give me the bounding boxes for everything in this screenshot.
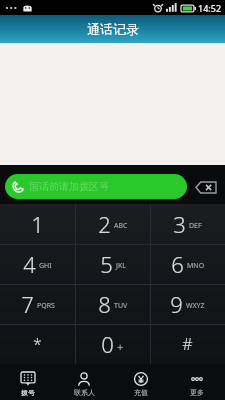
button[interactable]: * — [0, 324, 75, 364]
staticText: 5 — [100, 249, 113, 279]
staticText: 9 — [170, 289, 183, 319]
button[interactable]: 充值 — [113, 364, 169, 400]
button[interactable]: 5 — [75, 244, 150, 284]
staticText: 联系人 — [74, 388, 95, 397]
staticText: 6 — [171, 249, 184, 279]
staticText: WXYZ — [186, 301, 205, 311]
button[interactable]: 4 — [0, 244, 75, 284]
staticText: 7 — [21, 289, 34, 319]
staticText: 14:52 — [198, 2, 222, 14]
staticText: # — [182, 333, 193, 355]
staticText: 3 — [173, 209, 186, 239]
button[interactable]: # — [150, 324, 225, 364]
staticText: 8 — [98, 289, 111, 319]
staticText: 拨号 — [21, 388, 35, 397]
staticText: 0 — [101, 329, 114, 359]
button[interactable]: 6 — [150, 244, 225, 284]
staticText: GHI — [39, 261, 52, 271]
staticText: 2 — [98, 209, 111, 239]
button[interactable]: 更多 — [169, 364, 225, 400]
button[interactable]: 2 — [75, 204, 150, 244]
button[interactable]: 1 — [0, 204, 75, 244]
button[interactable]: 9 — [150, 284, 225, 324]
staticText: 1 — [31, 209, 44, 239]
staticText: + — [117, 339, 124, 354]
staticText: 充值 — [134, 388, 148, 397]
staticText: ABC — [114, 221, 128, 231]
staticText: * — [33, 333, 42, 355]
button[interactable]: 8 — [75, 284, 150, 324]
staticText: JKL — [116, 261, 126, 271]
staticText: DEF — [189, 221, 202, 231]
button[interactable]: 国话前请加拨区号 — [5, 174, 187, 199]
staticText: MNO — [187, 261, 205, 271]
staticText: TUV — [114, 301, 128, 311]
staticText: 更多 — [190, 388, 204, 397]
button[interactable]: 拨号 — [0, 364, 56, 400]
button[interactable]: 0 — [75, 324, 150, 364]
button[interactable]: 3 — [150, 204, 225, 244]
staticText: 国话前请加拨区号 — [29, 180, 109, 193]
staticText: 通话记录 — [87, 21, 139, 37]
staticText: PQRS — [37, 301, 55, 311]
button[interactable]: 联系人 — [56, 364, 112, 400]
staticText: 4 — [23, 249, 36, 279]
button[interactable]: 7 — [0, 284, 75, 324]
button[interactable]: Delete — [192, 175, 220, 199]
